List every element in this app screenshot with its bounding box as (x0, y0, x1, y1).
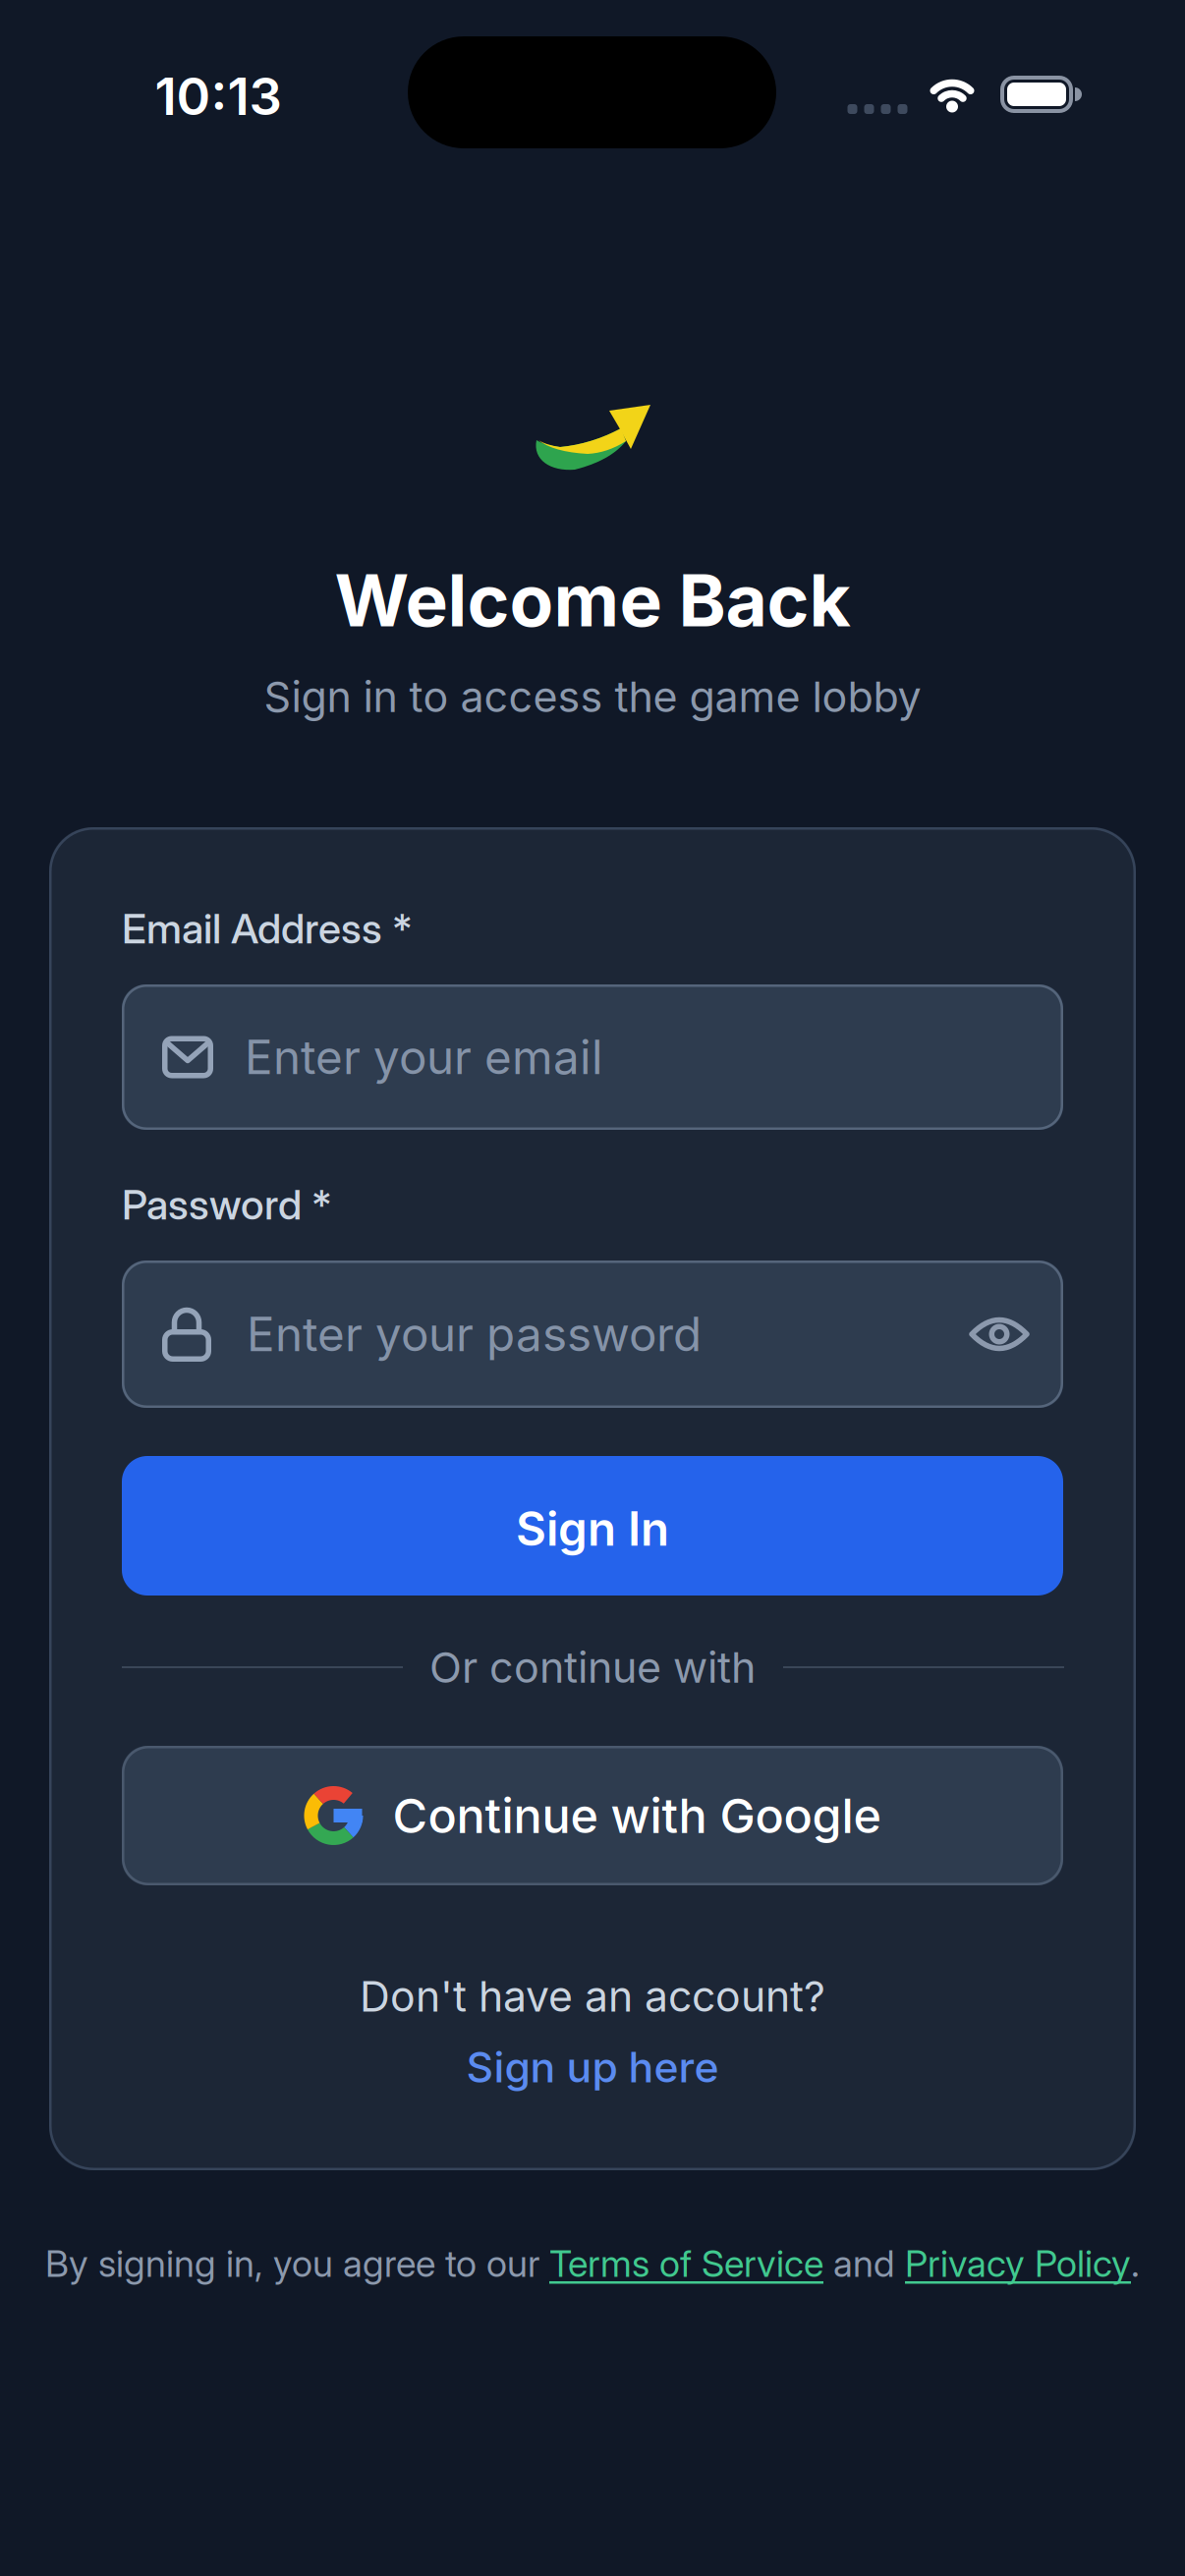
staticText: Email Address * (122, 903, 413, 953)
button[interactable]: Sign In (122, 1456, 1063, 1596)
button[interactable] (971, 1314, 1028, 1355)
button[interactable]: Enter your email (122, 984, 1063, 1130)
staticText: Enter your email (245, 1029, 603, 1085)
staticText: Enter your password (247, 1306, 702, 1362)
staticText: and (823, 2241, 905, 2286)
staticText: Welcome Back (335, 557, 850, 644)
staticText: 10:13 (155, 65, 282, 127)
button[interactable]: Privacy Policy (905, 2241, 1131, 2286)
button[interactable]: Continue with Google (122, 1746, 1063, 1885)
staticText: Or continue with (429, 1642, 756, 1693)
button[interactable]: Sign up here (466, 2042, 719, 2093)
staticText: Privacy Policy (905, 2241, 1131, 2286)
staticText: Don't have an account? (360, 1971, 825, 2022)
staticText: By signing in, you agree to our (45, 2241, 549, 2286)
staticText: Password * (122, 1180, 332, 1229)
staticText: Continue with Google (393, 1787, 881, 1844)
staticText: . (1131, 2241, 1140, 2286)
button[interactable]: Terms of Service (549, 2241, 823, 2286)
staticText: Terms of Service (549, 2241, 823, 2286)
button[interactable]: Enter your password (122, 1260, 1063, 1408)
staticText: Sign in to access the game lobby (264, 671, 921, 722)
staticText: Sign up here (466, 2042, 719, 2093)
staticText: Sign In (516, 1501, 669, 1557)
